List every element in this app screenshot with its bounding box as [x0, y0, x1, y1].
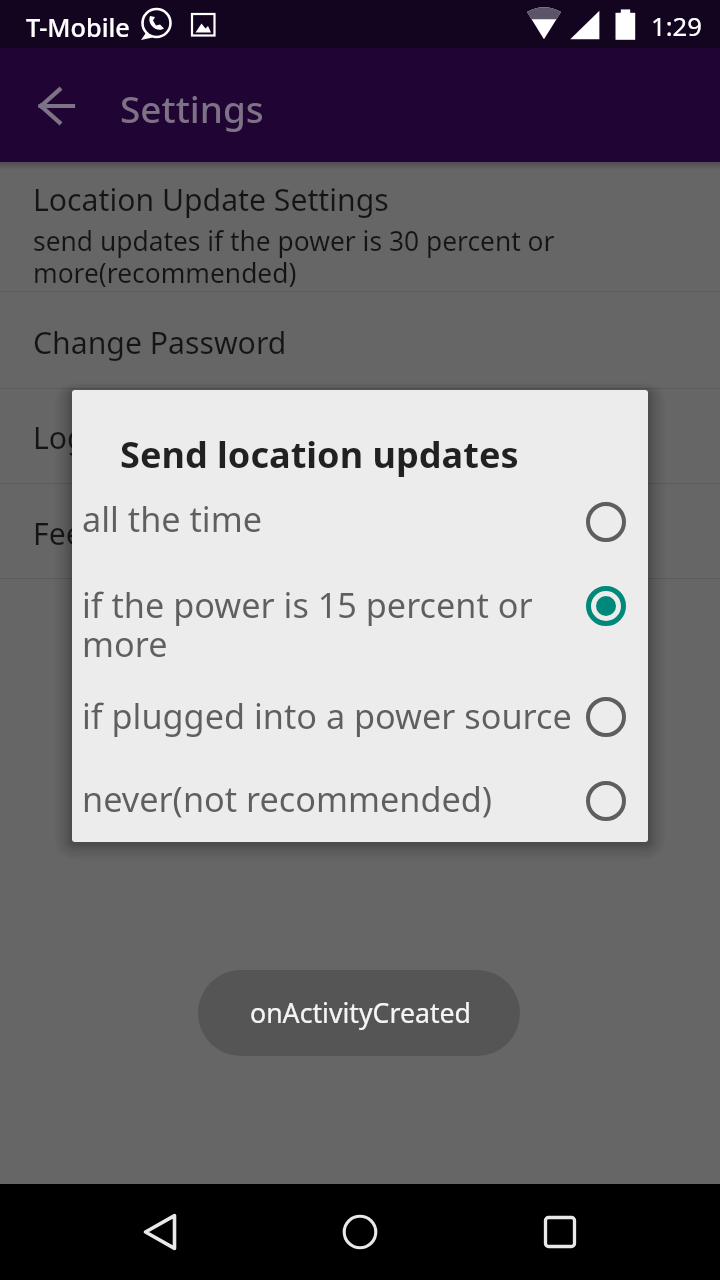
staticText: Change Password [33, 322, 287, 363]
button[interactable] [72, 685, 648, 749]
button[interactable]: Home [304, 1184, 416, 1280]
button[interactable]: onActivityCreated [198, 970, 520, 1056]
button[interactable] [72, 769, 648, 833]
staticText: onActivityCreated [250, 995, 471, 1031]
button[interactable]: Recent apps [504, 1184, 616, 1280]
button[interactable]: Change Password [0, 292, 720, 389]
staticText: send updates if the power is 30 percent … [33, 223, 589, 291]
staticText: never(not recommended) [82, 775, 580, 822]
button[interactable]: Feedback [0, 484, 720, 579]
staticText: if the power is 15 percent or more [82, 581, 580, 667]
button[interactable] [72, 490, 648, 554]
button[interactable] [72, 574, 648, 638]
staticText: 1:29 [651, 9, 702, 44]
staticText: Location Update Settings [33, 179, 389, 220]
staticText: T-Mobile [26, 10, 130, 44]
button[interactable]: Logout [0, 389, 720, 484]
staticText: all the time [82, 495, 580, 542]
staticText: Logout [33, 417, 134, 458]
staticText: Feedback [33, 513, 168, 554]
button[interactable]: Navigate up [22, 58, 90, 126]
staticText: Settings [120, 84, 264, 134]
staticText: if plugged into a power source [82, 692, 580, 739]
button[interactable]: Location Update Settings [0, 162, 720, 292]
staticText: Send location updates [120, 429, 519, 478]
button[interactable]: Back [104, 1184, 216, 1280]
